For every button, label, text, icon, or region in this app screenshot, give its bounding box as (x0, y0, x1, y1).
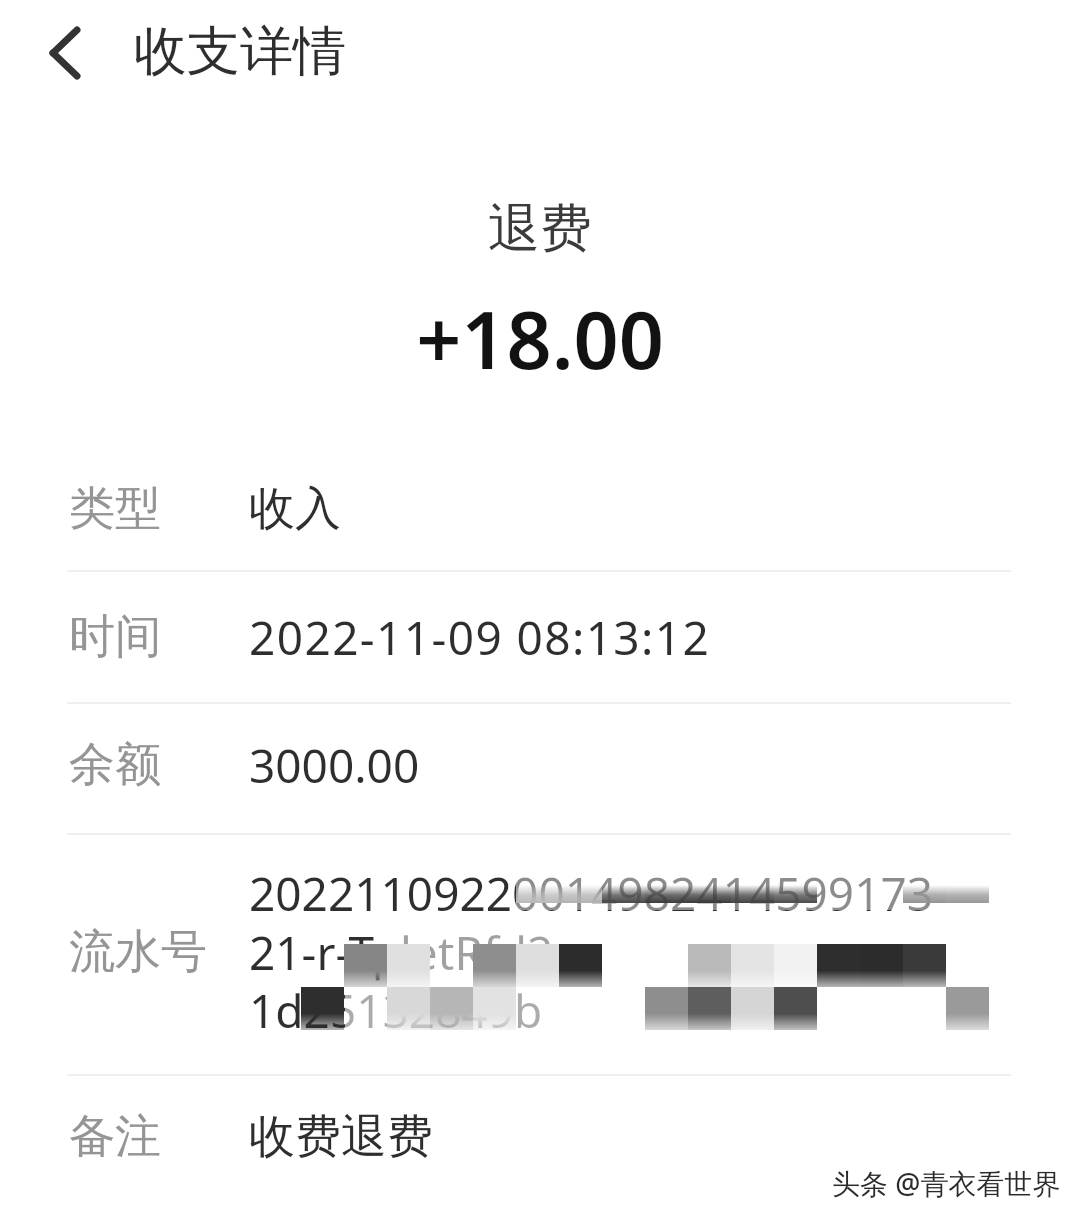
staticText: 备注 (69, 1108, 161, 1166)
staticText: 余额 (69, 736, 161, 794)
button[interactable]: 流水号 (0, 832, 1079, 1071)
staticText: 20221109220014982414599173 21-r-TpletRfd… (249, 862, 934, 1041)
button[interactable]: 类型 (0, 446, 1079, 571)
staticText: 收支详情 (134, 18, 346, 85)
staticText: 收入 (249, 480, 341, 538)
staticText: 退费 (488, 196, 592, 262)
staticText: 流水号 (69, 923, 207, 981)
staticText: 头条 @青衣看世界 (832, 1164, 1061, 1202)
staticText: 3000.00 (249, 734, 420, 797)
staticText: 收费退费 (249, 1108, 433, 1166)
staticText: +18.00 (416, 285, 664, 393)
button[interactable]: 备注 (0, 1072, 1079, 1202)
button[interactable]: Back (28, 14, 102, 88)
staticText: 2022-11-09 08:13:12 (249, 606, 711, 669)
staticText: 类型 (69, 480, 161, 538)
button[interactable]: 余额 (0, 700, 1079, 830)
button[interactable]: 时间 (0, 572, 1079, 702)
staticText: 时间 (69, 608, 161, 666)
